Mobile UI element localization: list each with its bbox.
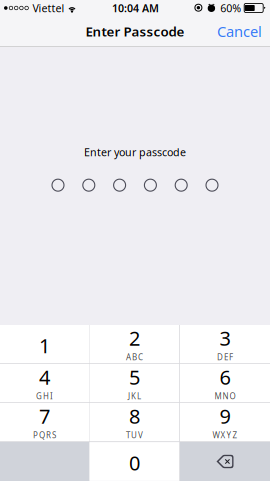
button[interactable]: 5 (89, 364, 179, 402)
button[interactable]: Cancel (209, 16, 270, 46)
staticText: Cancel (217, 21, 262, 41)
staticText: 6 (219, 364, 230, 390)
staticText: T U V (126, 430, 143, 440)
staticText: W X Y Z (212, 430, 237, 440)
staticText: J K L (128, 391, 141, 401)
staticText: P Q R S (33, 430, 56, 440)
button[interactable]: 3 (180, 325, 270, 363)
staticText: 2 (129, 325, 140, 351)
staticText: 5 (129, 364, 140, 390)
button[interactable]: 4 (0, 364, 89, 402)
button[interactable]: 8 (89, 403, 179, 441)
button[interactable]: 7 (0, 403, 89, 441)
button[interactable]: 9 (180, 403, 270, 441)
staticText: Enter your passcode (84, 145, 186, 159)
staticText: 10:04 AM (112, 1, 159, 15)
staticText: 9 (219, 403, 230, 429)
staticText: 7 (39, 403, 50, 429)
button[interactable]: 2 (89, 325, 179, 363)
button[interactable]: Delete (180, 442, 270, 481)
staticText: A B C (126, 352, 143, 362)
button[interactable]: 1 (0, 325, 89, 363)
staticText: 3 (219, 325, 230, 351)
staticText: 1 (39, 332, 50, 359)
staticText: D E F (217, 352, 233, 362)
staticText: 8 (129, 403, 140, 429)
staticText: M N O (214, 391, 235, 401)
staticText: G H I (36, 391, 53, 401)
button[interactable]: 6 (180, 364, 270, 402)
button[interactable]: 0 (89, 442, 179, 481)
staticText: Viettel (32, 1, 64, 15)
staticText: Enter Passcode (85, 22, 184, 40)
staticText: 4 (39, 364, 50, 390)
staticText: 60% (220, 1, 241, 15)
staticText: 0 (129, 449, 140, 476)
